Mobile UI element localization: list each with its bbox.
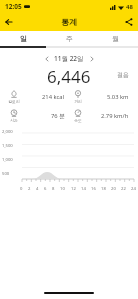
staticText: 12 [71,186,76,192]
staticText: 시간 [10,118,18,123]
staticText: 걸음 [117,71,129,79]
staticText: 11월 22일 [54,54,84,63]
staticText: 0 [20,186,23,192]
staticText: 1,000 [2,157,13,163]
staticText: 2.79 km/h [101,112,129,120]
button[interactable]: Previous day [41,53,52,64]
button[interactable]: 시간 [5,108,69,124]
staticText: 16 [91,186,96,192]
button[interactable]: Back [0,13,18,31]
staticText: 24 [131,186,136,192]
staticText: 6 [44,186,47,192]
button[interactable]: 월 [92,31,138,46]
staticText: 월 [112,34,119,43]
staticText: 20 [111,186,116,192]
staticText: 500 [2,171,10,177]
button[interactable]: 주 [46,31,92,46]
staticText: 거리 [74,99,82,104]
staticText: 12:05 [5,2,22,11]
staticText: 4 [36,186,39,192]
staticText: 48 [126,3,133,11]
staticText: 8 [52,186,55,192]
staticText: 주 [66,34,73,43]
staticText: 6,446 [47,65,91,85]
staticText: 2,000 [2,129,13,135]
button[interactable]: Next day [86,53,97,64]
button[interactable]: 일 [0,31,46,46]
staticText: 18 [101,186,106,192]
button[interactable]: Share [120,13,138,31]
staticText: 일 [20,34,27,43]
staticText: 1,500 [2,143,13,149]
staticText: 214 kcal [42,93,65,101]
button[interactable]: 칼로리 [5,89,69,105]
button[interactable]: 속도 [69,108,133,124]
staticText: 14 [81,186,86,192]
staticText: 10 [60,186,65,192]
staticText: 칼로리 [8,99,20,104]
staticText: 76 분 [51,112,65,120]
staticText: 5.03 km [107,93,129,101]
staticText: 속도 [74,118,82,123]
staticText: 22 [121,186,126,192]
staticText: 통계 [61,17,77,27]
staticText: 2 [28,186,31,192]
button[interactable]: 거리 [69,89,133,105]
